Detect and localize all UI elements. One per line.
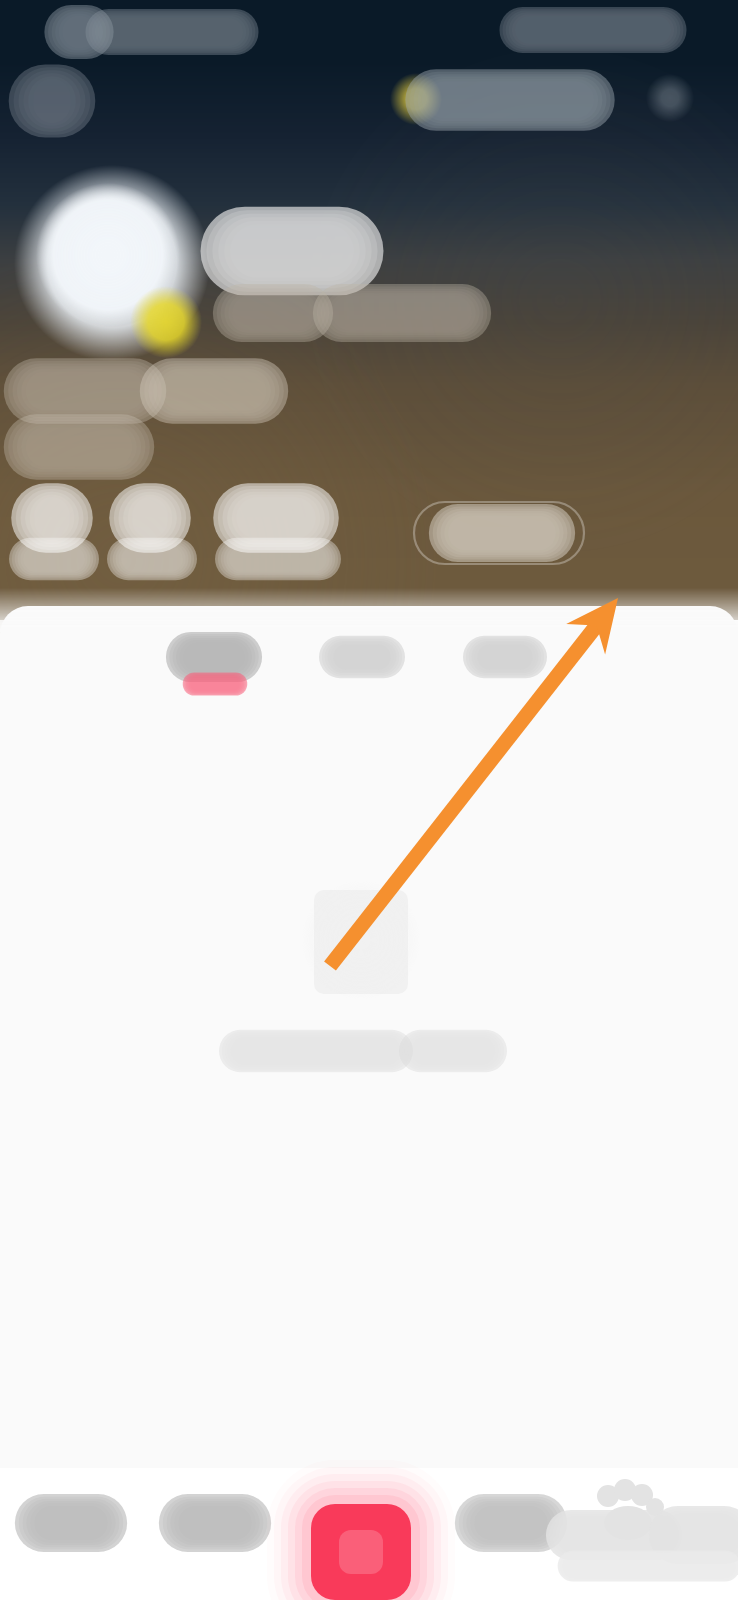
button[interactable]: Menu [44, 144, 106, 202]
